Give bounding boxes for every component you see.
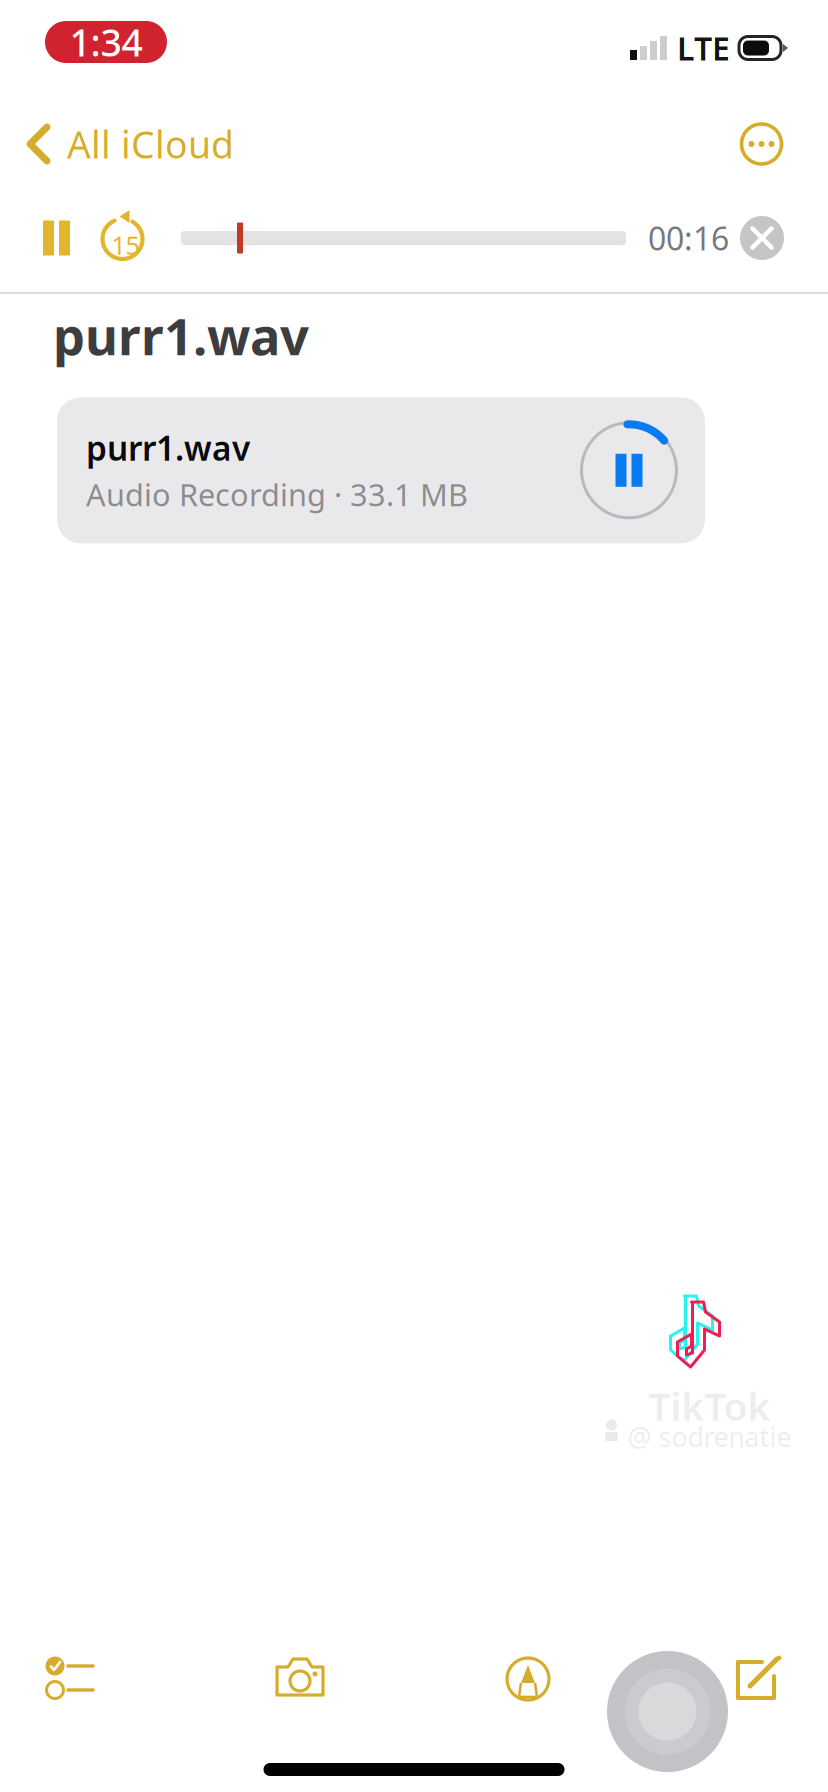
button[interactable]: More options xyxy=(740,102,828,185)
button[interactable]: Checklist xyxy=(25,1634,115,1724)
button[interactable]: Rewind 15 seconds xyxy=(85,193,161,283)
staticText: purr1.wav xyxy=(86,426,250,470)
button[interactable]: All iCloud xyxy=(0,105,234,183)
staticText: 15 xyxy=(111,228,139,262)
staticText: LTE xyxy=(677,27,730,69)
button[interactable]: Pause xyxy=(28,196,85,279)
staticText: All iCloud xyxy=(67,119,234,169)
staticText: Audio Recording · 33.1 MB xyxy=(86,474,468,515)
staticText: @ sodrenatie xyxy=(627,1419,791,1454)
button[interactable]: purr1.wav xyxy=(57,397,705,543)
button[interactable]: Markup xyxy=(485,1634,575,1724)
button[interactable]: New note xyxy=(715,1634,805,1724)
staticText: 00:16 xyxy=(648,217,729,259)
staticText: purr1.wav xyxy=(53,302,309,369)
staticText: 1:34 xyxy=(69,17,142,67)
staticText: TikTok xyxy=(648,1380,770,1431)
button[interactable]: Camera xyxy=(255,1634,345,1724)
button[interactable]: Close player xyxy=(740,202,828,274)
